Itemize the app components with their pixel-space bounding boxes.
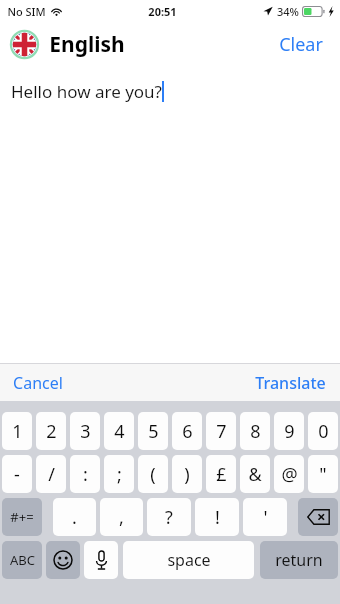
staticText: return: [275, 549, 323, 571]
staticText: 6: [182, 419, 193, 444]
staticText: 2: [46, 419, 57, 444]
button[interactable]: 1: [2, 412, 32, 450]
staticText: ": [319, 462, 327, 487]
staticText: 3: [80, 419, 91, 444]
staticText: 0: [318, 419, 329, 444]
staticText: ,: [119, 505, 124, 530]
staticText: Hello how are you?: [11, 80, 162, 103]
button[interactable]: 2: [36, 412, 66, 450]
staticText: :: [83, 462, 88, 487]
staticText: ): [184, 462, 190, 487]
button[interactable]: space: [123, 541, 254, 579]
button[interactable]: 3: [70, 412, 100, 450]
staticText: #+=: [10, 508, 34, 526]
button[interactable]: 6: [172, 412, 202, 450]
staticText: No SIM: [7, 4, 46, 19]
button[interactable]: 4: [104, 412, 134, 450]
button[interactable]: ;: [104, 455, 134, 493]
staticText: Clear: [279, 32, 323, 57]
button[interactable]: 7: [206, 412, 236, 450]
button[interactable]: ?: [147, 498, 191, 536]
button[interactable]: .: [53, 498, 96, 536]
staticText: 1: [12, 419, 23, 444]
button[interactable]: /: [36, 455, 66, 493]
staticText: &: [248, 462, 262, 487]
button[interactable]: -: [2, 455, 32, 493]
button[interactable]: Cancel: [13, 367, 63, 399]
button[interactable]: 9: [274, 412, 304, 450]
button[interactable]: Translate: [255, 367, 326, 399]
button[interactable]: Backspace: [298, 498, 338, 536]
staticText: ?: [165, 505, 173, 530]
button[interactable]: @: [274, 455, 304, 493]
button[interactable]: (: [138, 455, 168, 493]
button[interactable]: ": [308, 455, 338, 493]
button[interactable]: Emoji: [46, 541, 80, 579]
button[interactable]: !: [195, 498, 239, 536]
staticText: 20:51: [148, 4, 177, 19]
button[interactable]: #+=: [2, 498, 42, 536]
button[interactable]: Dictation: [84, 541, 118, 579]
staticText: (: [150, 462, 156, 487]
staticText: 7: [216, 419, 227, 444]
button[interactable]: ): [172, 455, 202, 493]
staticText: 5: [148, 419, 159, 444]
staticText: Cancel: [13, 372, 63, 394]
staticText: .: [72, 505, 77, 530]
staticText: /: [48, 462, 55, 487]
button[interactable]: ,: [100, 498, 143, 536]
button[interactable]: 5: [138, 412, 168, 450]
button[interactable]: 0: [308, 412, 338, 450]
button[interactable]: ABC: [2, 541, 42, 579]
button[interactable]: Clear: [275, 28, 327, 61]
button[interactable]: Source language: [10, 30, 39, 59]
staticText: 4: [114, 419, 125, 444]
button[interactable]: £: [206, 455, 236, 493]
button[interactable]: return: [260, 541, 338, 579]
staticText: ABC: [10, 551, 35, 569]
staticText: space: [167, 549, 211, 571]
staticText: -: [14, 462, 20, 487]
staticText: English: [49, 30, 125, 59]
staticText: ': [263, 505, 268, 530]
staticText: £: [216, 462, 227, 487]
staticText: Translate: [255, 372, 326, 394]
button[interactable]: 8: [240, 412, 270, 450]
button[interactable]: ': [243, 498, 287, 536]
button[interactable]: &: [240, 455, 270, 493]
staticText: !: [215, 505, 220, 530]
button[interactable]: :: [70, 455, 100, 493]
staticText: 8: [250, 419, 261, 444]
staticText: 34%: [277, 4, 299, 19]
staticText: ;: [117, 462, 122, 487]
staticText: @: [281, 462, 298, 487]
staticText: 9: [284, 419, 295, 444]
